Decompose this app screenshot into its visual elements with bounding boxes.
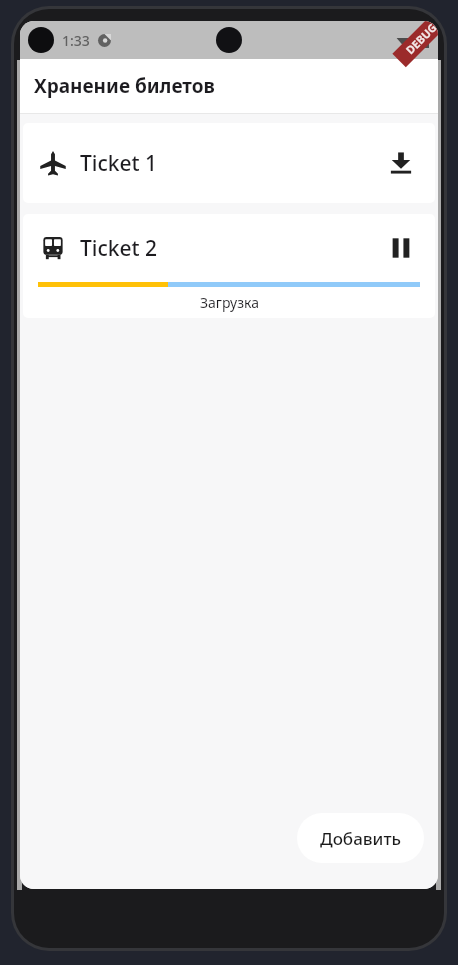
button[interactable]: Ticket 2 bbox=[23, 214, 435, 318]
button[interactable]: Pause bbox=[379, 226, 423, 270]
staticText: DEBUG bbox=[402, 21, 438, 57]
staticText: 1:33 bbox=[62, 31, 90, 50]
staticText: Ticket 2 bbox=[80, 234, 158, 263]
staticText: Добавить bbox=[320, 827, 401, 850]
button[interactable]: Ticket 1 bbox=[23, 123, 435, 203]
button[interactable]: Добавить bbox=[297, 813, 424, 863]
button[interactable]: Download bbox=[379, 141, 423, 185]
staticText: Хранение билетов bbox=[34, 73, 215, 99]
staticText: Ticket 1 bbox=[80, 149, 158, 178]
staticText: Загрузка bbox=[200, 293, 259, 312]
